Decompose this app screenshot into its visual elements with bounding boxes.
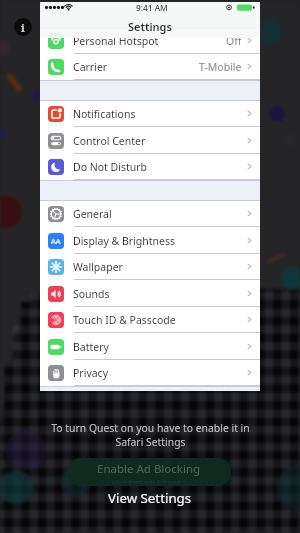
button[interactable]: Do Not Disturb bbox=[40, 153, 260, 180]
staticText: To turn Quest on you have to enable it i… bbox=[51, 421, 250, 449]
staticText: Notifications bbox=[73, 107, 136, 121]
staticText: Personal Hotspot bbox=[73, 34, 159, 48]
button[interactable]: Notifications bbox=[40, 100, 260, 127]
staticText: General bbox=[73, 207, 112, 221]
button[interactable]: Carrier bbox=[40, 53, 260, 80]
staticText: 9:41 AM bbox=[136, 2, 168, 13]
staticText: Do Not Disturb bbox=[73, 160, 148, 174]
button[interactable]: AA bbox=[40, 227, 260, 254]
staticText: i bbox=[21, 20, 25, 35]
button[interactable]: Wallpaper bbox=[40, 253, 260, 280]
staticText: Touch ID & Passcode bbox=[73, 313, 176, 327]
staticText: Display & Brightness bbox=[73, 234, 176, 248]
staticText: Off bbox=[226, 34, 242, 48]
button[interactable]: Info bbox=[14, 18, 32, 36]
staticText: Carrier bbox=[73, 60, 108, 74]
staticText: Privacy bbox=[73, 366, 109, 380]
button[interactable]: View Settings bbox=[80, 488, 220, 507]
button[interactable]: Enable Ad Blocking bbox=[67, 458, 231, 486]
staticText: AA bbox=[51, 236, 61, 246]
staticText: View Settings bbox=[108, 489, 192, 507]
staticText: Sounds bbox=[73, 287, 110, 301]
button[interactable]: Control Center bbox=[40, 127, 260, 154]
staticText: T-Mobile bbox=[199, 60, 242, 74]
staticText: Wallpaper bbox=[73, 260, 123, 274]
button[interactable]: Personal Hotspot bbox=[40, 27, 260, 54]
button[interactable]: Privacy bbox=[40, 359, 260, 386]
button[interactable]: Sounds bbox=[40, 280, 260, 307]
button[interactable]: General bbox=[40, 200, 260, 227]
staticText: Settings bbox=[128, 19, 172, 34]
staticText: Control Center bbox=[73, 134, 146, 148]
staticText: Battery bbox=[73, 340, 109, 354]
staticText: Enable Ad Blocking bbox=[97, 461, 201, 477]
button[interactable]: Battery bbox=[40, 333, 260, 360]
button[interactable]: Touch ID & Passcode bbox=[40, 306, 260, 333]
staticText: block porn, ads & trackers bbox=[112, 478, 186, 486]
